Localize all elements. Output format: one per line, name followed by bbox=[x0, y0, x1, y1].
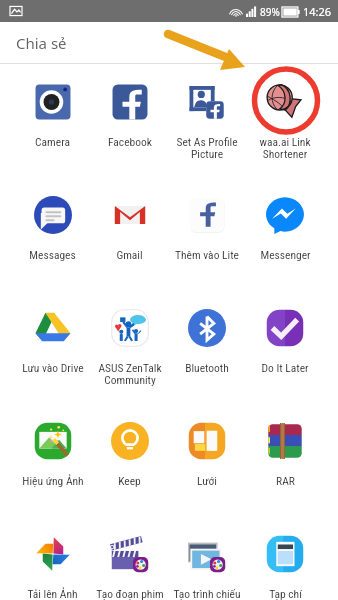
button[interactable]: Do It Later bbox=[246, 290, 324, 403]
staticText: Set As Profile Picture bbox=[176, 135, 238, 161]
staticText: 89% bbox=[260, 5, 280, 19]
staticText: RAR bbox=[276, 474, 295, 487]
staticText: Messenger bbox=[260, 248, 311, 261]
staticText: Messages bbox=[29, 248, 76, 261]
staticText: Hiệu ứng Ảnh bbox=[22, 474, 84, 487]
button[interactable]: Hiệu ứng Ảnh bbox=[14, 403, 91, 516]
button[interactable]: Tải lên Ảnh bbox=[14, 516, 91, 600]
staticText: 14:26 bbox=[303, 4, 332, 19]
button[interactable]: Messages bbox=[14, 177, 91, 290]
staticText: Tạo đoạn phim bbox=[96, 587, 164, 600]
button[interactable]: ASUS ZenTalk Community bbox=[91, 290, 168, 403]
staticText: Do It Later bbox=[261, 361, 309, 374]
staticText: Tạp chí bbox=[269, 587, 302, 600]
staticText: Gmail bbox=[116, 248, 143, 261]
button[interactable]: waa.ai Link Shortener bbox=[246, 64, 324, 177]
button[interactable]: Thêm vào Lite bbox=[168, 177, 246, 290]
staticText: Tạo trình chiếu bbox=[173, 587, 241, 600]
button[interactable]: Lưu vào Drive bbox=[14, 290, 91, 403]
button[interactable]: Tạp chí bbox=[246, 516, 324, 600]
button[interactable]: RAR bbox=[246, 403, 324, 516]
staticText: Lưu vào Drive bbox=[22, 361, 84, 374]
staticText: Lưới bbox=[197, 474, 217, 487]
staticText: Chia sẻ bbox=[16, 33, 67, 53]
staticText: waa.ai Link Shortener bbox=[259, 135, 311, 161]
button[interactable]: Bluetooth bbox=[168, 290, 246, 403]
staticText: Facebook bbox=[108, 135, 152, 148]
button[interactable]: Tạo đoạn phim bbox=[91, 516, 168, 600]
button[interactable]: Set As Profile Picture bbox=[168, 64, 246, 177]
staticText: Camera bbox=[35, 135, 70, 148]
staticText: ASUS ZenTalk Community bbox=[98, 361, 162, 387]
button[interactable]: Keep bbox=[91, 403, 168, 516]
button[interactable]: Facebook bbox=[91, 64, 168, 177]
button[interactable]: Gmail bbox=[91, 177, 168, 290]
staticText: Tải lên Ảnh bbox=[27, 587, 78, 600]
staticText: Keep bbox=[118, 474, 141, 487]
button[interactable]: Lưới bbox=[168, 403, 246, 516]
button[interactable]: Tạo trình chiếu bbox=[168, 516, 246, 600]
button[interactable]: Camera bbox=[14, 64, 91, 177]
staticText: Bluetooth bbox=[185, 361, 229, 374]
staticText: Thêm vào Lite bbox=[175, 248, 239, 261]
button[interactable]: Messenger bbox=[246, 177, 324, 290]
